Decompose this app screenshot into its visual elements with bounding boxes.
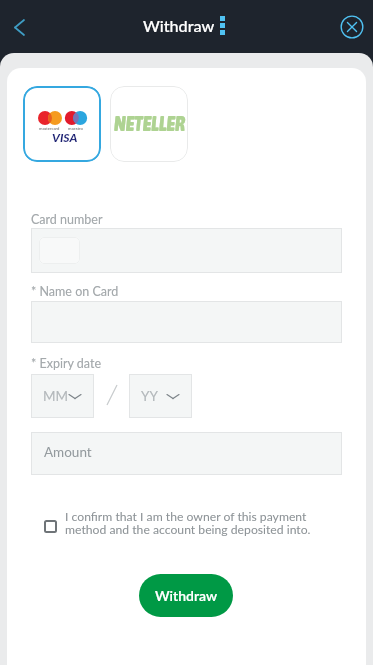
button[interactable]: Credit or debit card <box>23 86 101 162</box>
staticText: * Expiry date <box>31 356 102 371</box>
button[interactable]: Amount <box>31 432 342 475</box>
staticText: NETELLER <box>114 113 185 136</box>
staticText: YY <box>141 388 158 404</box>
button[interactable]: More options <box>216 11 228 39</box>
staticText: Card number <box>31 212 103 227</box>
staticText: maestro <box>68 126 83 131</box>
button[interactable]: I confirm that I am the owner of this pa… <box>44 509 329 537</box>
button[interactable]: Card number <box>31 228 342 273</box>
button[interactable]: MM <box>31 374 94 418</box>
staticText: VISA <box>52 130 78 144</box>
staticText: * Name on Card <box>31 284 119 299</box>
staticText: Withdraw <box>155 587 218 604</box>
button[interactable]: Back <box>2 10 36 44</box>
button[interactable]: Name on card <box>31 301 342 343</box>
staticText: MM <box>43 388 69 404</box>
staticText: I confirm that I am the owner of this pa… <box>65 509 329 537</box>
staticText: Amount <box>44 444 92 460</box>
staticText: Withdraw <box>143 16 215 35</box>
button[interactable]: Close <box>336 11 368 43</box>
button[interactable]: Withdraw <box>139 574 233 617</box>
button[interactable]: Neteller <box>110 86 188 162</box>
button[interactable]: YY <box>129 374 192 418</box>
staticText: mastercard <box>39 126 60 131</box>
